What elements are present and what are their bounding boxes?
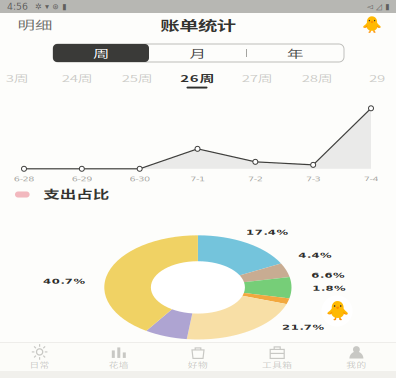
staticText: 🐥 bbox=[362, 15, 382, 34]
staticText: 账单统计 bbox=[172, 15, 224, 34]
staticText: 3周 bbox=[10, 71, 24, 85]
staticText: 28周 bbox=[307, 71, 326, 85]
button[interactable]: 3周 bbox=[0, 70, 45, 90]
staticText: 4:56 bbox=[7, 1, 28, 12]
staticText: 月 bbox=[192, 45, 203, 61]
button[interactable]: 26周 bbox=[169, 70, 225, 90]
staticText: 工具箱 bbox=[267, 360, 288, 370]
staticText: 周 bbox=[95, 45, 106, 61]
button[interactable]: 29 bbox=[349, 70, 396, 90]
staticText: 6-28 bbox=[17, 175, 31, 183]
staticText: 29 bbox=[372, 71, 382, 85]
staticText: 7-3 bbox=[308, 175, 318, 183]
staticText: ✲ ▾ ⊛ ▮ bbox=[35, 2, 66, 11]
staticText: 明细 bbox=[23, 16, 47, 33]
staticText: 17.4% bbox=[252, 227, 281, 237]
staticText: 6.6% bbox=[316, 270, 339, 280]
button[interactable]: 27周 bbox=[229, 70, 285, 90]
button[interactable]: 我的 bbox=[317, 343, 396, 371]
staticText: 好物 bbox=[191, 360, 205, 370]
button[interactable]: 日常 bbox=[0, 343, 79, 371]
button[interactable]: Assistant bbox=[319, 294, 354, 327]
button[interactable]: 好物 bbox=[158, 343, 238, 371]
staticText: 6-30 bbox=[133, 175, 147, 183]
button[interactable]: 25周 bbox=[109, 70, 165, 90]
button[interactable]: 24周 bbox=[49, 70, 105, 90]
staticText: 🐥 bbox=[325, 300, 348, 322]
staticText: 27周 bbox=[247, 71, 266, 85]
staticText: 年 bbox=[289, 45, 300, 61]
staticText: 日常 bbox=[33, 360, 47, 370]
button[interactable]: 周 bbox=[53, 44, 149, 62]
button[interactable]: Profile bbox=[358, 13, 386, 36]
staticText: 26周 bbox=[186, 71, 207, 85]
staticText: 支出占比 bbox=[52, 185, 100, 203]
staticText: ◅ ◿ ▮ bbox=[367, 2, 389, 11]
staticText: 21.7% bbox=[288, 322, 317, 332]
button[interactable]: 工具箱 bbox=[238, 343, 317, 371]
staticText: 40.7% bbox=[49, 276, 78, 286]
button[interactable]: 月 bbox=[149, 44, 246, 62]
staticText: 25周 bbox=[127, 71, 146, 85]
staticText: 24周 bbox=[67, 71, 86, 85]
staticText: 4.4% bbox=[303, 250, 326, 260]
button[interactable]: 明细 bbox=[12, 13, 58, 36]
staticText: 花墙 bbox=[112, 360, 126, 370]
staticText: 7-1 bbox=[192, 175, 202, 183]
button[interactable]: 花墙 bbox=[79, 343, 158, 371]
button[interactable]: 年 bbox=[246, 44, 344, 62]
staticText: 6-29 bbox=[75, 175, 89, 183]
staticText: 7-2 bbox=[250, 175, 260, 183]
staticText: 我的 bbox=[349, 360, 363, 370]
button[interactable]: 28周 bbox=[289, 70, 345, 90]
staticText: 7-4 bbox=[366, 175, 376, 183]
staticText: 1.8% bbox=[317, 283, 340, 293]
